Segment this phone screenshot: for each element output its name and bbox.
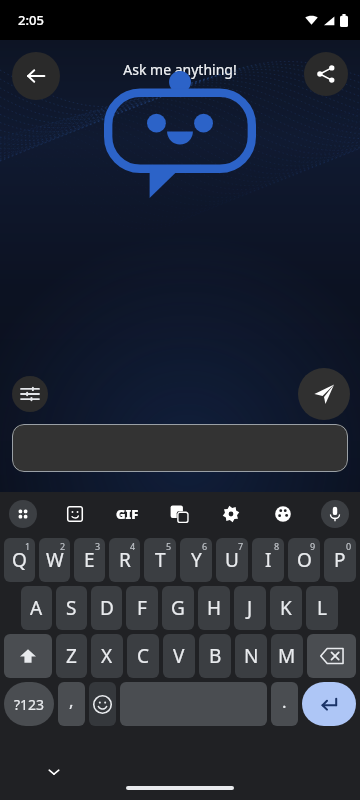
staticText: ?123 (14, 695, 45, 714)
button[interactable]: W (39, 538, 70, 582)
button[interactable]: ?123 (4, 682, 54, 726)
staticText: A (30, 595, 43, 621)
button[interactable]: V (163, 634, 195, 678)
button[interactable]: Settings (12, 376, 48, 412)
button[interactable]: Shift (4, 634, 52, 678)
button[interactable]: Z (56, 634, 87, 678)
button[interactable]: M (271, 634, 303, 678)
staticText: 2:05 (18, 11, 44, 29)
button[interactable]: N (235, 634, 267, 678)
staticText: 3 (95, 540, 101, 552)
staticText: P (334, 547, 346, 573)
button[interactable]: Backspace (307, 634, 356, 678)
button[interactable]: Settings (214, 497, 248, 531)
button[interactable]: B (199, 634, 231, 678)
staticText: B (209, 643, 222, 669)
staticText: 6 (202, 540, 208, 552)
button[interactable]: L (306, 586, 338, 630)
button[interactable]: Translate (162, 497, 196, 531)
button[interactable]: Y (180, 538, 212, 582)
staticText: O (297, 547, 312, 573)
staticText: E (84, 547, 95, 573)
staticText: Q (12, 547, 27, 573)
button[interactable]: H (198, 586, 230, 630)
button[interactable]: Apps (6, 497, 40, 531)
button[interactable]: S (56, 586, 87, 630)
button[interactable]: F (126, 586, 158, 630)
staticText: W (46, 547, 64, 573)
button[interactable]: , (58, 682, 85, 726)
staticText: J (247, 595, 253, 621)
staticText: 7 (238, 540, 244, 552)
button[interactable]: R (109, 538, 140, 582)
staticText: C (137, 643, 150, 669)
button[interactable]: . (271, 682, 298, 726)
button[interactable]: Back (12, 52, 60, 100)
button[interactable]: D (91, 586, 122, 630)
staticText: U (225, 547, 239, 573)
button[interactable]: Q (4, 538, 35, 582)
button[interactable]: Hide keyboard (42, 760, 66, 784)
staticText: X (101, 643, 113, 669)
button[interactable]: Stickers (58, 497, 92, 531)
staticText: F (137, 595, 147, 621)
button[interactable]: I (252, 538, 284, 582)
button[interactable]: P (324, 538, 356, 582)
button[interactable]: Emoji (89, 682, 116, 726)
staticText: 8 (274, 540, 280, 552)
staticText: M (278, 643, 296, 669)
staticText: 4 (130, 540, 136, 552)
button[interactable]: O (288, 538, 320, 582)
staticText: T (155, 547, 166, 573)
button[interactable]: Enter (302, 682, 356, 726)
staticText: , (69, 689, 74, 712)
staticText: R (119, 547, 131, 573)
button[interactable]: X (91, 634, 123, 678)
staticText: V (173, 643, 185, 669)
staticText: N (244, 643, 259, 669)
staticText: 2 (60, 540, 66, 552)
button[interactable]: Send (298, 368, 350, 420)
button[interactable]: J (234, 586, 266, 630)
button[interactable]: U (216, 538, 248, 582)
staticText: 1 (25, 540, 31, 552)
staticText: G (171, 595, 185, 621)
button[interactable]: E (74, 538, 105, 582)
button[interactable]: GIF (110, 497, 144, 531)
staticText: Ask me anything! (123, 60, 237, 79)
staticText: . (282, 690, 287, 713)
button[interactable]: G (162, 586, 194, 630)
staticText: S (66, 595, 77, 621)
staticText: D (100, 595, 114, 621)
button[interactable]: A (21, 586, 52, 630)
button[interactable]: Voice input (318, 497, 352, 531)
button[interactable]: T (144, 538, 176, 582)
button[interactable]: C (127, 634, 159, 678)
staticText: H (207, 595, 222, 621)
staticText: L (317, 595, 327, 621)
staticText: 0 (346, 540, 352, 552)
staticText: Y (191, 547, 202, 573)
staticText: K (280, 595, 292, 621)
staticText: GIF (116, 505, 139, 523)
staticText: Z (66, 643, 77, 669)
button[interactable]: Share (304, 52, 348, 96)
staticText: I (265, 547, 272, 573)
staticText: 9 (310, 540, 316, 552)
button[interactable] (12, 424, 348, 472)
button[interactable]: K (270, 586, 302, 630)
button[interactable]: Theme (266, 497, 300, 531)
staticText: 5 (166, 540, 172, 552)
